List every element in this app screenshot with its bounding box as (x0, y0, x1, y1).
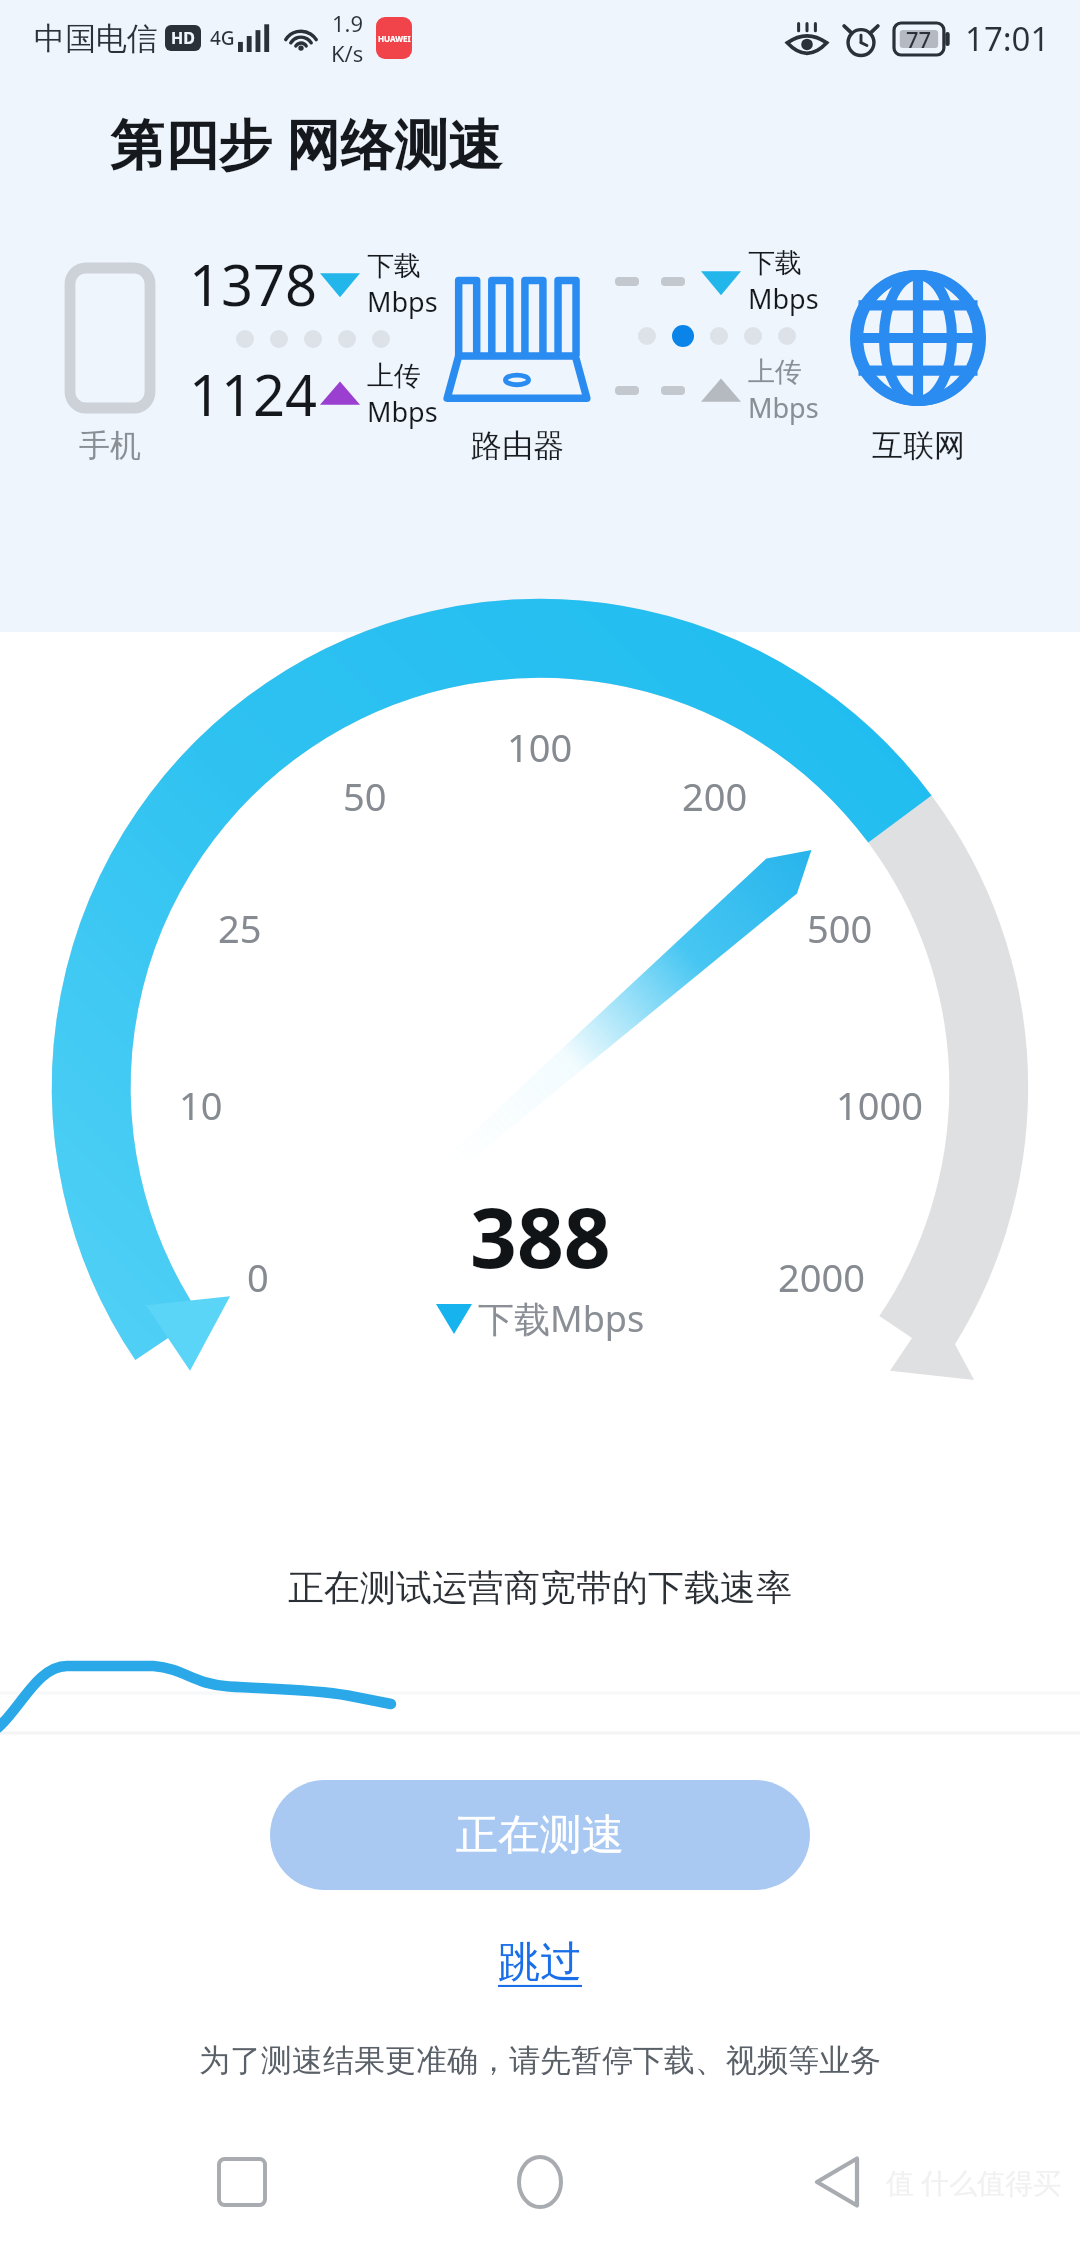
staticText: 100 (507, 721, 573, 773)
button[interactable]: Home (484, 2126, 596, 2238)
staticText: 上传 (367, 359, 421, 393)
staticText: Mbps (367, 393, 438, 430)
staticText: 互联网 (872, 426, 965, 465)
staticText: 25 (218, 902, 262, 954)
staticText: 500 (807, 902, 873, 954)
button[interactable]: Recent apps (186, 2126, 298, 2238)
staticText: 值 什么值得买 (886, 2163, 1062, 2201)
button[interactable]: Back (782, 2126, 894, 2238)
button[interactable]: 跳过 (470, 1928, 610, 1997)
staticText: 下载 (748, 246, 802, 280)
staticText: HUAWEI (378, 33, 411, 44)
staticText: 1.9 (332, 8, 364, 38)
staticText: 17:01 (965, 16, 1050, 61)
other: Alarm (843, 21, 879, 57)
staticText: 下载 (367, 249, 421, 283)
staticText: 1124 (189, 356, 318, 432)
staticText: 路由器 (471, 426, 564, 465)
staticText: HD (171, 27, 195, 49)
staticText: 10 (179, 1079, 223, 1131)
staticText: 为了测速结果更准确，请先暂停下载、视频等业务 (199, 2041, 881, 2080)
staticText: Mbps (367, 283, 438, 320)
staticText: 50 (343, 770, 387, 822)
other: Eye comfort mode (786, 23, 828, 55)
staticText: 下载Mbps (478, 1294, 645, 1343)
staticText: 手机 (79, 426, 141, 465)
staticText: 正在测速 (456, 1809, 624, 1862)
staticText: 上传 (748, 355, 802, 389)
staticText: 1378 (189, 246, 318, 322)
staticText: K/s (331, 38, 364, 68)
staticText: 388 (470, 1180, 611, 1292)
staticText: 中国电信 (34, 19, 158, 58)
staticText: 0 (247, 1251, 269, 1303)
button[interactable]: 正在测速 (270, 1780, 810, 1890)
staticText: 2000 (778, 1251, 865, 1303)
staticText: 跳过 (498, 1936, 582, 1989)
staticText: 第四步 网络测速 (110, 106, 503, 180)
staticText: 正在测试运营商宽带的下载速率 (288, 1565, 792, 1610)
staticText: 77 (906, 24, 932, 54)
staticText: Mbps (748, 389, 819, 426)
staticText: Mbps (748, 280, 819, 317)
staticText: 200 (682, 770, 748, 822)
staticText: 4G (210, 25, 235, 51)
staticText: 1000 (836, 1079, 923, 1131)
